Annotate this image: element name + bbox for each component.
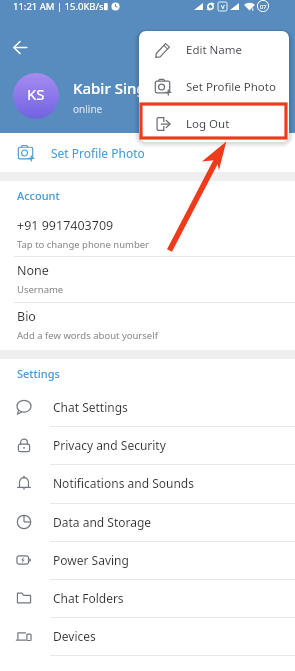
staticText: KS bbox=[27, 84, 45, 104]
staticText: Set Profile Photo bbox=[186, 79, 276, 95]
button[interactable]: Profile photo bbox=[13, 73, 59, 119]
button[interactable]: Set Profile Photo bbox=[0, 133, 295, 172]
staticText: Chat Settings bbox=[53, 399, 128, 415]
staticText: online bbox=[73, 102, 103, 116]
button[interactable]: Edit Name bbox=[139, 31, 289, 68]
button[interactable]: Chat Folders bbox=[0, 579, 295, 617]
staticText: Privacy and Security bbox=[53, 437, 166, 453]
staticText: V bbox=[221, 3, 225, 11]
staticText: Username bbox=[17, 283, 64, 296]
button[interactable]: Data and Storage bbox=[0, 503, 295, 541]
staticText: Edit Name bbox=[186, 42, 243, 58]
button[interactable]: Back bbox=[7, 34, 33, 60]
staticText: Devices bbox=[53, 628, 96, 644]
button[interactable]: +91 9917403709 bbox=[0, 211, 295, 257]
button[interactable]: None bbox=[0, 256, 295, 302]
staticText: +91 9917403709 bbox=[17, 217, 114, 234]
staticText: Add a few words about yourself bbox=[17, 329, 158, 342]
staticText: Set Profile Photo bbox=[51, 145, 145, 161]
button[interactable]: Bio bbox=[0, 302, 295, 348]
staticText: Power Saving bbox=[53, 552, 129, 568]
staticText: Kabir Singh bbox=[73, 78, 156, 98]
staticText: Bio bbox=[17, 308, 36, 325]
staticText: Settings bbox=[17, 366, 60, 381]
staticText: 11:21 AM | 15.0KB/s bbox=[13, 0, 104, 13]
button[interactable]: Set Profile Photo bbox=[139, 68, 289, 105]
staticText: Data and Storage bbox=[53, 514, 152, 530]
button[interactable]: Chat Settings bbox=[0, 388, 295, 426]
staticText: Chat Folders bbox=[53, 590, 124, 606]
button[interactable]: Power Saving bbox=[0, 541, 295, 579]
staticText: Notifications and Sounds bbox=[53, 475, 194, 491]
staticText: 07 bbox=[260, 3, 267, 10]
button[interactable]: Notifications and Sounds bbox=[0, 464, 295, 502]
staticText: Account bbox=[17, 188, 60, 203]
staticText: Log Out bbox=[186, 116, 230, 132]
button[interactable]: Log Out bbox=[139, 105, 289, 142]
staticText: None bbox=[17, 262, 49, 279]
staticText: Tap to change phone number bbox=[17, 238, 150, 251]
button[interactable]: Privacy and Security bbox=[0, 426, 295, 464]
button[interactable]: Devices bbox=[0, 617, 295, 655]
